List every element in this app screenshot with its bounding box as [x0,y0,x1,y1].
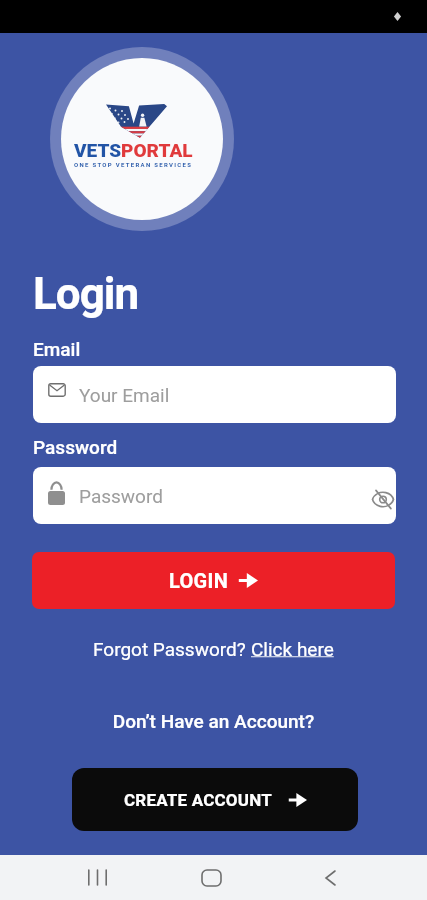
staticText: Don’t Have an Account? [0,710,427,732]
button[interactable]: CREATE ACCOUNT [72,768,358,831]
staticText: Email [33,338,81,360]
button[interactable] [189,855,234,900]
button[interactable] [75,855,120,900]
button[interactable]: LOGIN [32,552,395,609]
staticText: LOGIN [169,569,229,592]
staticText: VETSPORTAL [74,139,193,161]
staticText: Login [33,268,139,320]
button[interactable]: Your Email [33,366,396,423]
button[interactable]: Click here [251,638,334,660]
staticText: Forgot Password? [93,638,251,660]
staticText: ONE STOP VETERAN SERVICES [74,161,193,168]
staticText: Your Email [79,384,170,406]
staticText: Password [79,485,163,507]
staticText: CREATE ACCOUNT [124,790,272,810]
staticText: Password [33,436,118,458]
button[interactable]: Password [33,467,396,524]
button[interactable] [308,855,353,900]
